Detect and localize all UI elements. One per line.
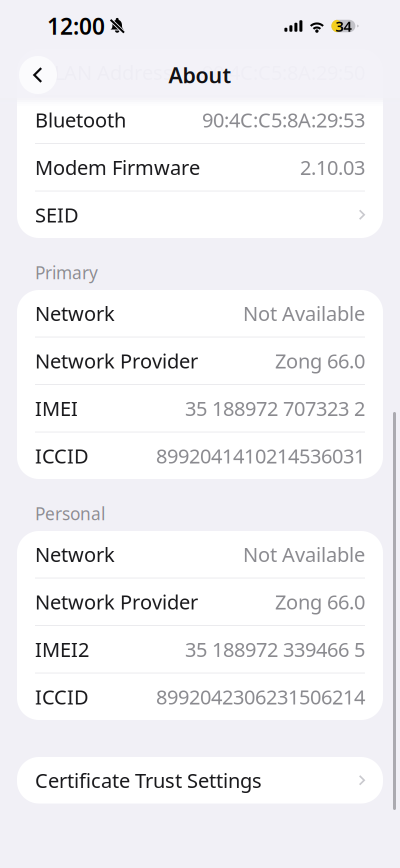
staticText: Network Provider (35, 347, 198, 374)
staticText: 35 188972 707323 2 (185, 395, 365, 422)
staticText: Personal (35, 502, 105, 525)
staticText: About (168, 61, 231, 89)
button[interactable]: Modem Firmware (17, 144, 383, 190)
staticText: 90:4C:C5:8A:29:53 (202, 106, 365, 133)
button[interactable]: Bluetooth (17, 96, 383, 143)
button[interactable]: Network Provider (17, 578, 383, 625)
button[interactable]: Network (17, 290, 383, 336)
staticText: IMEI (35, 395, 78, 422)
button[interactable]: Network Provider (17, 337, 383, 384)
staticText: Modem Firmware (35, 154, 200, 181)
button[interactable]: SEID (17, 191, 383, 238)
staticText: Network (35, 541, 115, 568)
button[interactable]: IMEI (17, 385, 383, 431)
button[interactable]: Certificate Trust Settings (17, 757, 383, 803)
staticText: 90:4C:C5:8A:29:50 (202, 59, 365, 86)
staticText: 8992041410214536031 (156, 442, 365, 469)
button[interactable]: WLAN Address (17, 49, 383, 95)
staticText: 35 188972 339466 5 (185, 636, 365, 663)
staticText: Certificate Trust Settings (35, 767, 262, 794)
button[interactable]: Network (17, 531, 383, 577)
staticText: Zong 66.0 (275, 588, 365, 615)
staticText: 34 (335, 16, 351, 36)
staticText: Not Available (243, 541, 365, 568)
button[interactable]: ICCID (17, 673, 383, 720)
staticText: Network (35, 300, 115, 327)
staticText: SEID (35, 201, 79, 228)
staticText: ICCID (35, 683, 89, 710)
staticText: Bluetooth (35, 106, 126, 133)
staticText: Not Available (243, 300, 365, 327)
staticText: ICCID (35, 442, 89, 469)
staticText: Network Provider (35, 588, 198, 615)
staticText: Zong 66.0 (275, 347, 365, 374)
button[interactable]: ICCID (17, 432, 383, 479)
button[interactable]: Back (16, 53, 60, 97)
staticText: Primary (35, 261, 98, 284)
staticText: WLAN Address (35, 59, 173, 86)
staticText: 2.10.03 (300, 154, 365, 181)
staticText: 12:00 (47, 11, 105, 41)
staticText: IMEI2 (35, 636, 89, 663)
button[interactable]: IMEI2 (17, 626, 383, 672)
staticText: 8992042306231506214 (156, 683, 365, 710)
